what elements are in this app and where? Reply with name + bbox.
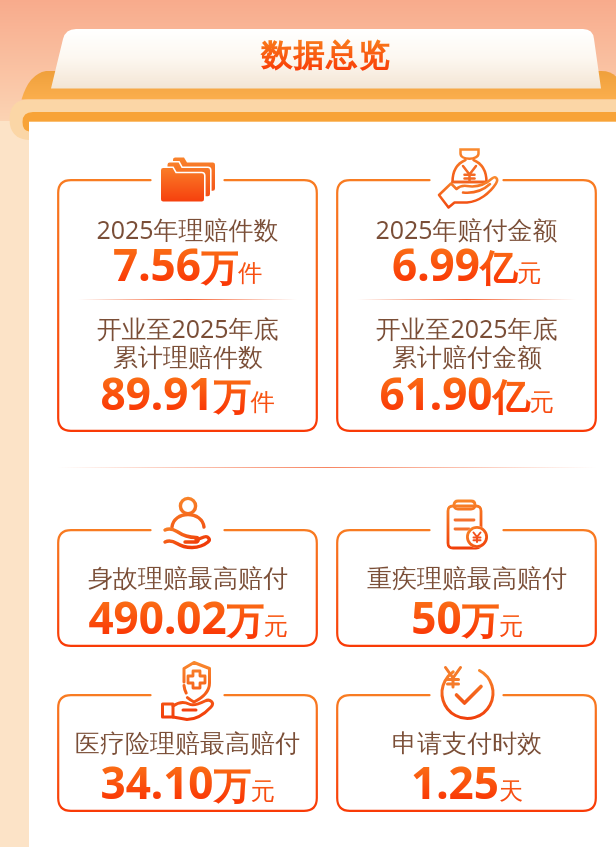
staticText: 重疾理赔最高赔付	[367, 563, 567, 594]
other: 身故理赔	[163, 496, 213, 552]
other: 医疗险理赔	[160, 660, 216, 718]
other: 申请支付时效	[440, 666, 494, 720]
staticText: 累计赔付金额	[392, 342, 542, 373]
staticText: 申请支付时效	[392, 728, 542, 759]
staticText: 7.56万件	[113, 234, 262, 294]
staticText: 开业至2025年底	[375, 311, 558, 345]
button[interactable]: 重疾理赔最高赔付	[336, 529, 597, 647]
staticText: 身故理赔最高赔付	[88, 563, 288, 594]
button[interactable]: 2025年赔付金额	[336, 179, 597, 432]
button[interactable]: 医疗险理赔最高赔付	[57, 694, 318, 812]
staticText: 数据总览	[260, 36, 390, 75]
staticText: 开业至2025年底	[96, 311, 279, 345]
staticText: 50万元	[411, 587, 523, 647]
staticText: 89.91万件	[100, 363, 275, 423]
staticText: 6.99亿元	[392, 234, 541, 294]
staticText: 2025年赔付金额	[375, 212, 558, 246]
button[interactable]: 身故理赔最高赔付	[57, 529, 318, 647]
staticText: 2025年理赔件数	[96, 212, 279, 246]
staticText: 累计理赔件数	[113, 342, 263, 373]
button[interactable]: 2025年理赔件数	[57, 179, 318, 432]
staticText: 34.10万元	[100, 752, 275, 812]
staticText: 医疗险理赔最高赔付	[75, 728, 300, 759]
staticText: 61.90亿元	[379, 363, 554, 423]
other: 重疾理赔	[444, 499, 490, 551]
other: 理赔件数	[160, 152, 216, 198]
staticText: 1.25天	[411, 752, 523, 812]
staticText: 490.02万元	[88, 587, 288, 647]
other: 赔付金额	[437, 147, 497, 211]
button[interactable]: 申请支付时效	[336, 694, 597, 812]
